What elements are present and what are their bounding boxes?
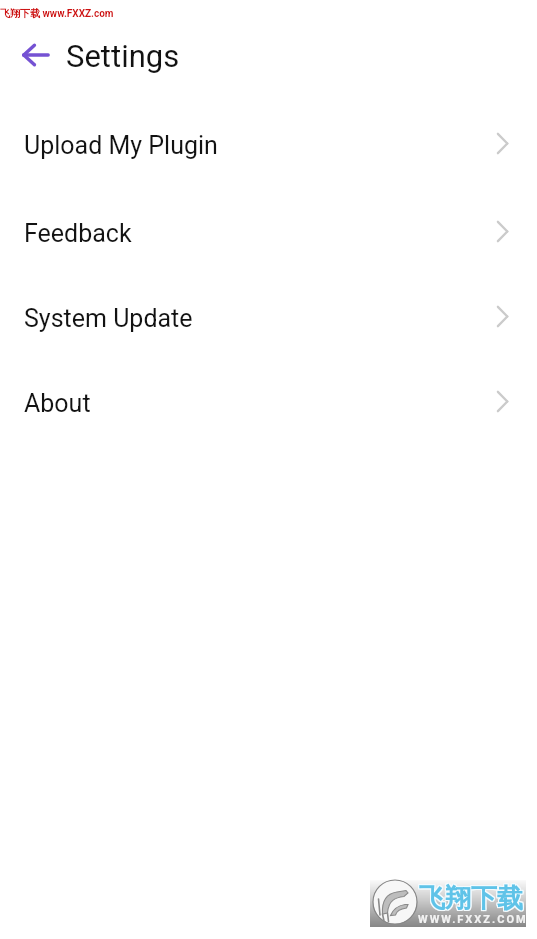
staticText: About — [24, 389, 91, 418]
staticText: 飞翔下载 — [418, 881, 522, 914]
button[interactable]: Feedback — [0, 175, 537, 260]
staticText: 飞翔下载 www.FXXZ.com — [0, 7, 114, 20]
staticText: System Update — [24, 304, 193, 333]
staticText: 飞翔下载 — [419, 883, 523, 916]
staticText: 飞翔下载 — [418, 883, 522, 916]
staticText: 飞翔下载 — [418, 882, 522, 915]
staticText: Settings — [66, 38, 180, 74]
staticText: Upload My Plugin — [24, 131, 218, 160]
staticText: Feedback — [24, 219, 132, 248]
staticText: 飞翔下载 — [419, 881, 523, 914]
staticText: WWW.FXXZ.COM — [418, 913, 528, 926]
staticText: 飞翔下载 — [420, 882, 524, 915]
button[interactable]: Upload My Plugin — [0, 89, 537, 175]
button[interactable]: About — [0, 345, 537, 430]
button[interactable]: System Update — [0, 260, 537, 345]
staticText: 飞翔下载 — [419, 882, 523, 915]
staticText: 飞翔下载 — [420, 883, 524, 916]
staticText: 飞翔下载 — [420, 881, 524, 914]
button[interactable]: Back — [21, 41, 49, 69]
